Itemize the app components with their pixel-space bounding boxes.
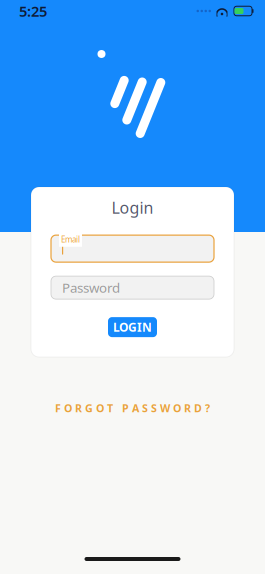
staticText: F O R G O T P A S S W O R D ?	[55, 401, 210, 415]
staticText: Login	[111, 197, 153, 218]
button[interactable]: Password	[51, 276, 214, 299]
staticText: LOGIN	[113, 319, 152, 335]
button[interactable]	[51, 235, 214, 262]
staticText: Email	[61, 234, 80, 245]
staticText: 5:25	[19, 1, 47, 21]
button[interactable]: F O R G O T P A S S W O R D ?	[32, 399, 232, 417]
button[interactable]: LOGIN	[108, 317, 157, 337]
staticText: Password	[62, 279, 120, 296]
